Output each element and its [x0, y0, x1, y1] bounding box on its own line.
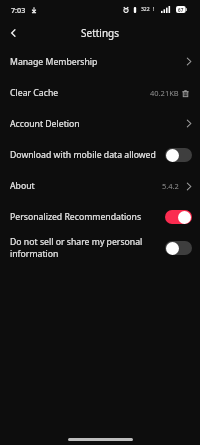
staticText: Manage Membership	[10, 56, 98, 68]
staticText: 67	[178, 7, 184, 13]
staticText: Download with mobile data allowed	[10, 149, 156, 161]
staticText: Do not sell or share my personal informa…	[10, 236, 159, 259]
staticText: 7:03	[11, 5, 26, 15]
button[interactable]: Manage Membership	[0, 46, 200, 77]
staticText: Clear Cache	[10, 87, 59, 99]
button[interactable]: Clear Cache	[0, 77, 200, 108]
button[interactable]: Toggle on	[165, 210, 192, 224]
staticText: 322	[141, 6, 150, 13]
button[interactable]: Do not sell or share my personal informa…	[0, 232, 200, 263]
button[interactable]: Personalized Recommendations	[0, 201, 200, 232]
button[interactable]: Toggle off	[165, 148, 192, 162]
button[interactable]: Account Deletion	[0, 108, 200, 139]
button[interactable]: About	[0, 170, 200, 201]
staticText: !	[153, 6, 155, 13]
button[interactable]: Clear cache	[182, 90, 192, 97]
button[interactable]: Download with mobile data allowed	[0, 139, 200, 170]
staticText: Personalized Recommendations	[10, 211, 142, 223]
staticText: 5.4.2	[162, 181, 179, 191]
staticText: About	[10, 180, 35, 192]
staticText: Settings	[81, 26, 120, 40]
staticText: Account Deletion	[10, 118, 80, 130]
button[interactable]: Back	[0, 20, 26, 46]
staticText: 40.21KB	[150, 88, 179, 98]
button[interactable]: Toggle off	[165, 241, 192, 255]
